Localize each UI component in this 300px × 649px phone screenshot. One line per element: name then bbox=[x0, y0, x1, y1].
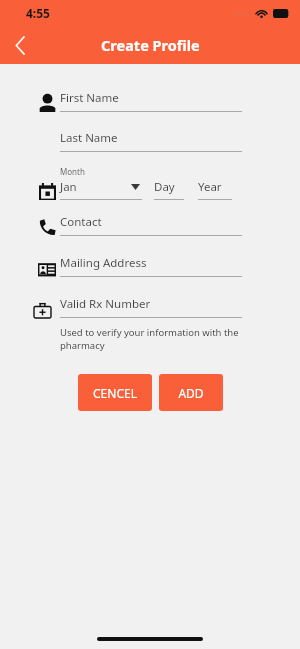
button[interactable]: Last Name bbox=[26, 130, 242, 152]
button[interactable]: CENCEL bbox=[78, 374, 152, 411]
staticText: Mailing Address bbox=[60, 255, 147, 271]
staticText: Last Name bbox=[60, 130, 118, 146]
button[interactable]: Mailing Address bbox=[26, 255, 242, 277]
staticText: Valid Rx Number bbox=[60, 296, 151, 312]
button[interactable]: Valid Rx Number bbox=[60, 296, 242, 318]
staticText: Contact bbox=[60, 214, 102, 230]
button[interactable]: Day bbox=[154, 179, 184, 200]
staticText: Create Profile bbox=[101, 35, 200, 55]
button[interactable]: Year bbox=[198, 179, 232, 200]
staticText: 4:55 bbox=[26, 5, 50, 21]
staticText: CENCEL bbox=[93, 385, 137, 401]
button[interactable]: First Name bbox=[26, 90, 242, 112]
staticText: ADD bbox=[178, 385, 204, 401]
button[interactable]: Contact bbox=[26, 214, 242, 236]
button[interactable]: Back bbox=[0, 26, 40, 64]
staticText: Month bbox=[60, 166, 85, 177]
staticText: Used to verify your information with the… bbox=[60, 326, 256, 352]
staticText: Jan bbox=[60, 179, 77, 195]
staticText: Year bbox=[198, 179, 222, 195]
staticText: First Name bbox=[60, 90, 119, 106]
button[interactable]: Month bbox=[60, 166, 142, 200]
button[interactable]: ADD bbox=[159, 374, 223, 411]
staticText: Day bbox=[154, 179, 175, 195]
